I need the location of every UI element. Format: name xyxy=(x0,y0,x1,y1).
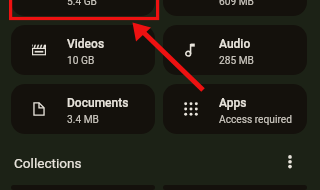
button[interactable]: Audio xyxy=(163,25,307,75)
staticText: Audio xyxy=(219,37,251,51)
staticText: 3.4 MB xyxy=(67,114,99,126)
staticText: Apps xyxy=(219,96,247,110)
button[interactable]: Videos xyxy=(11,25,155,75)
staticText: 609 MB xyxy=(219,0,254,8)
staticText: Documents xyxy=(67,96,129,110)
staticText: 10 GB xyxy=(67,55,95,67)
button[interactable]: Games xyxy=(163,0,307,16)
button[interactable]: Images xyxy=(11,0,155,16)
staticText: Videos xyxy=(67,37,105,51)
staticText: Collections xyxy=(14,155,82,171)
button[interactable]: Apps xyxy=(163,84,307,134)
staticText: 285 MB xyxy=(219,55,254,67)
button[interactable]: More options xyxy=(276,149,304,177)
staticText: Access required xyxy=(219,114,292,126)
button[interactable]: Documents xyxy=(11,84,155,134)
staticText: 5.4 GB xyxy=(67,0,97,8)
